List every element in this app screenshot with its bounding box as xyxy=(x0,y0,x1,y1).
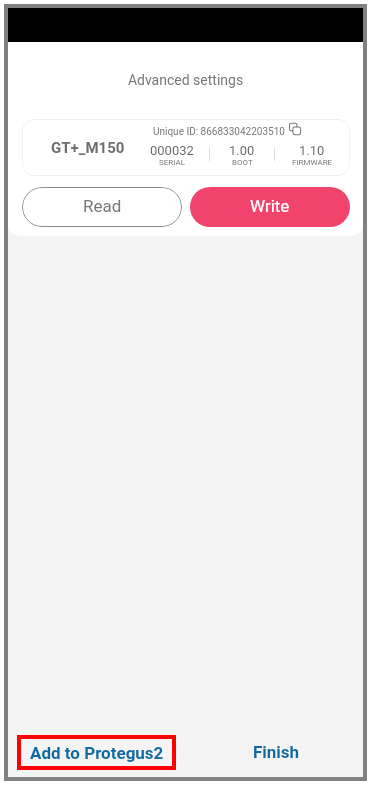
button[interactable]: Finish xyxy=(238,735,314,769)
button[interactable]: Copy unique ID xyxy=(289,123,301,135)
staticText: GT+_M150 xyxy=(51,139,125,157)
staticText: Add to Protegus2 xyxy=(30,743,164,763)
staticText: Write xyxy=(250,196,290,216)
staticText: BOOT xyxy=(232,158,253,167)
staticText: Read xyxy=(83,196,122,216)
button[interactable]: Add to Protegus2 xyxy=(17,735,176,770)
staticText: 000032 xyxy=(150,143,194,158)
staticText: 1.10 xyxy=(299,143,325,158)
button[interactable]: Read xyxy=(22,187,182,227)
staticText: 1.00 xyxy=(229,143,255,158)
staticText: Unique ID: 866833042203510 xyxy=(153,126,285,138)
staticText: SERIAL xyxy=(159,158,185,167)
staticText: FIRMWARE xyxy=(292,158,333,167)
staticText: Finish xyxy=(253,742,300,762)
button[interactable]: Write xyxy=(190,187,350,227)
staticText: Advanced settings xyxy=(8,72,363,88)
